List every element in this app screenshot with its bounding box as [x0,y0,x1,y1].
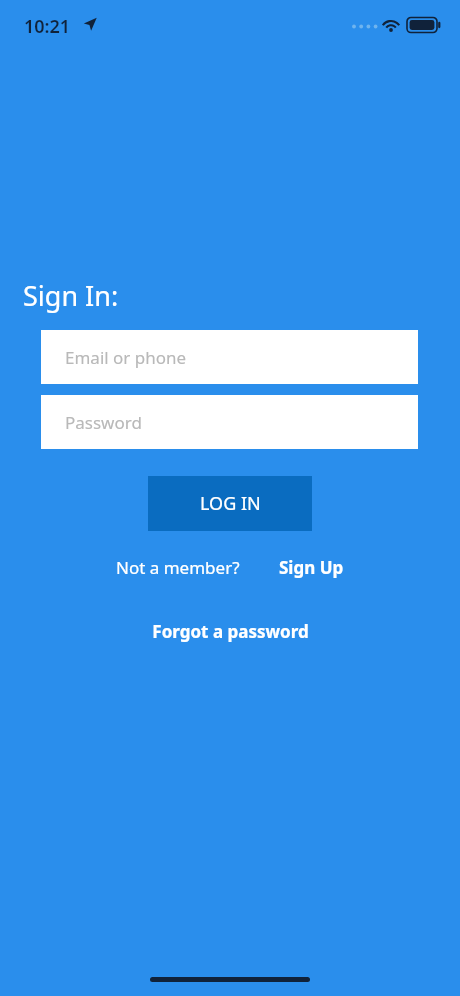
button[interactable]: LOG IN [148,476,312,531]
other: Signal, Wi-Fi and battery status [350,14,442,36]
button[interactable]: Password [41,395,418,449]
staticText: 10:21 [24,14,71,39]
button[interactable]: Forgot a password [152,620,309,643]
staticText: Email or phone [65,346,187,369]
staticText: Password [65,411,142,434]
staticText: LOG IN [200,491,261,516]
staticText: Sign In: [23,277,119,314]
button[interactable]: Email or phone [41,330,418,384]
button[interactable]: Sign Up [279,556,344,579]
button[interactable]: Not a member? [116,556,240,579]
other: Location active [83,17,97,31]
